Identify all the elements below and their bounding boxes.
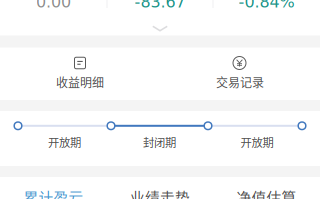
staticText: 0.00	[36, 0, 71, 11]
staticText: -83.67	[134, 0, 185, 11]
staticText: 开放期	[48, 134, 81, 150]
staticText: 业绩走势	[130, 186, 190, 199]
button[interactable]: 交易记录	[160, 52, 320, 104]
staticText: 累计盈亏	[23, 186, 83, 199]
staticText: 封闭期	[143, 134, 176, 150]
staticText: 交易记录	[216, 73, 264, 91]
button[interactable]: 业绩走势	[107, 186, 213, 199]
staticText: 开放期	[240, 134, 273, 150]
button[interactable]: 净值估算	[213, 186, 320, 199]
staticText: 收益明细	[56, 73, 104, 91]
button[interactable]: 累计盈亏	[0, 186, 107, 199]
staticText: -0.84%	[238, 0, 294, 11]
button[interactable]: 收益明细	[0, 52, 160, 104]
staticText: 净值估算	[236, 186, 296, 199]
